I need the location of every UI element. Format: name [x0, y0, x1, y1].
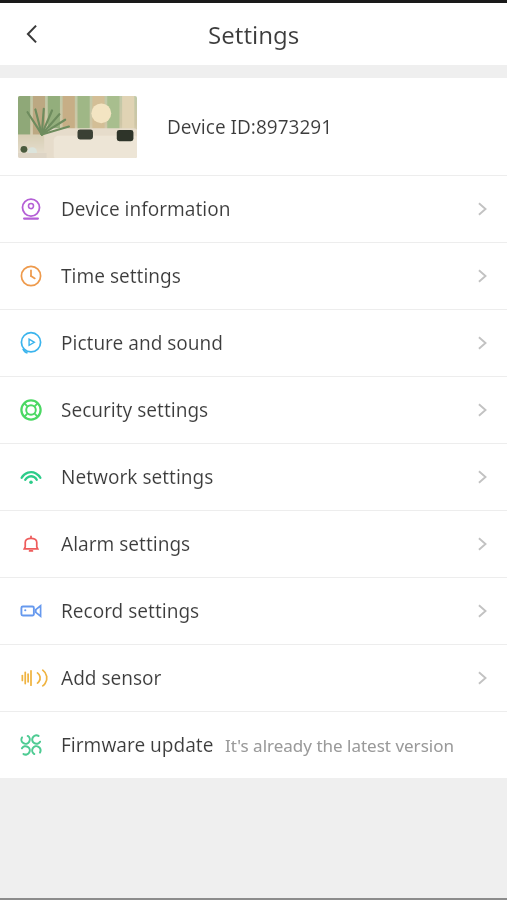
staticText: Alarm settings	[61, 531, 191, 557]
button[interactable]: Security settings	[0, 377, 507, 443]
button[interactable]: Device ID:8973291	[0, 78, 507, 175]
staticText: Device ID:8973291	[167, 114, 333, 140]
staticText: Picture and sound	[61, 330, 224, 356]
button[interactable]: Back	[8, 10, 56, 58]
staticText: Add sensor	[61, 665, 162, 691]
button[interactable]: Alarm settings	[0, 511, 507, 577]
staticText: Record settings	[61, 598, 200, 624]
staticText: Security settings	[61, 397, 209, 423]
button[interactable]: Picture and sound	[0, 310, 507, 376]
staticText: Device information	[61, 196, 231, 222]
button[interactable]: Add sensor	[0, 645, 507, 711]
staticText: Time settings	[61, 263, 181, 289]
staticText: Settings	[208, 18, 300, 51]
staticText: Network settings	[61, 464, 214, 490]
button[interactable]: Time settings	[0, 243, 507, 309]
button[interactable]: Device information	[0, 176, 507, 242]
button[interactable]: Network settings	[0, 444, 507, 510]
staticText: Firmware update	[61, 732, 214, 758]
staticText: It's already the latest version	[225, 734, 454, 757]
button[interactable]: Firmware update	[0, 712, 507, 778]
button[interactable]: Record settings	[0, 578, 507, 644]
